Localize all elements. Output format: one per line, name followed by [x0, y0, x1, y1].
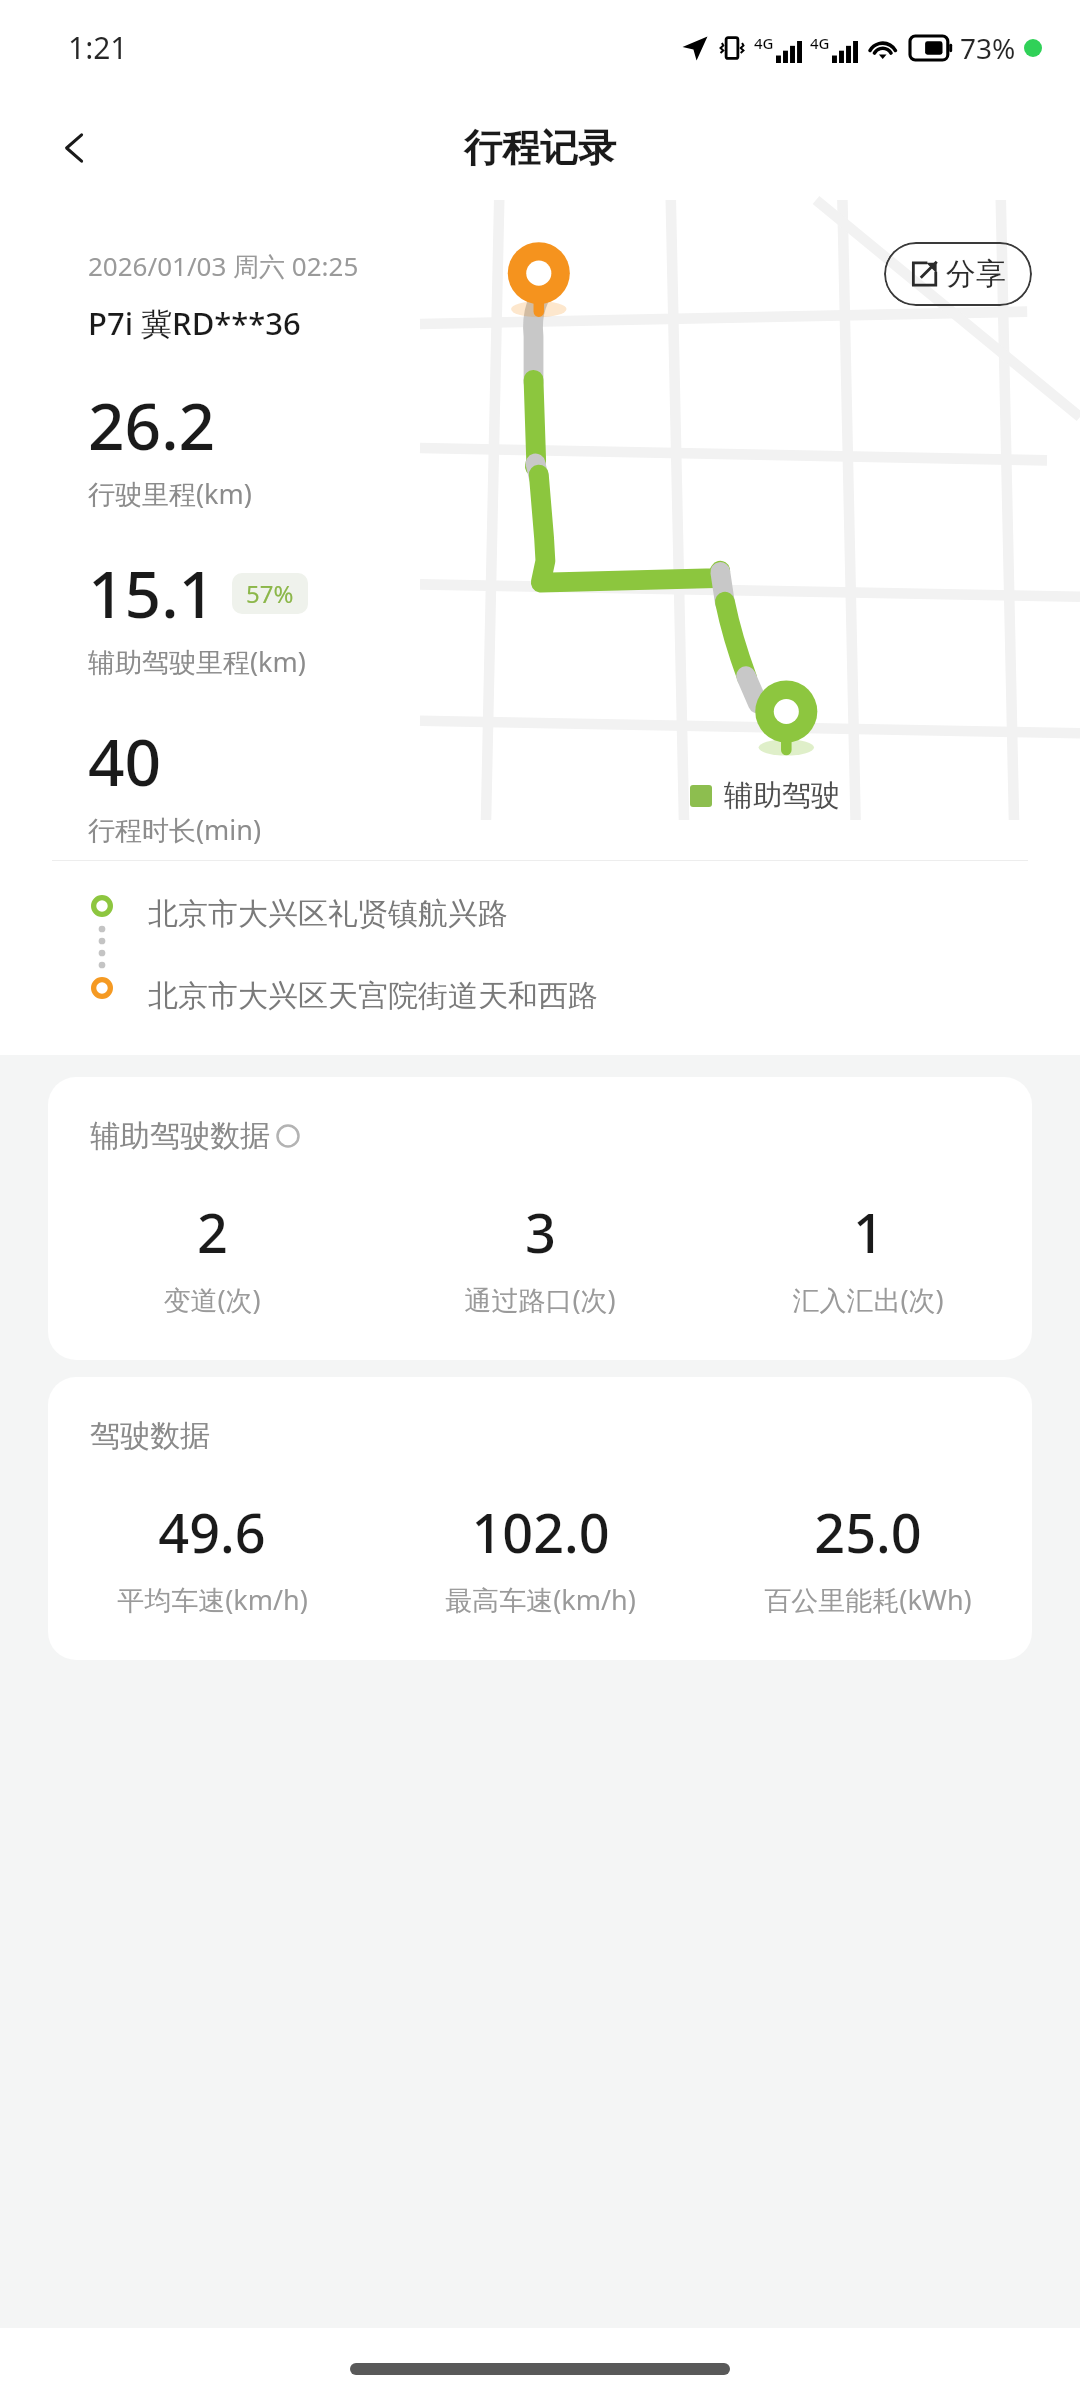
staticText: 汇入汇出(次) — [792, 1281, 944, 1318]
staticText: 驾驶数据 — [90, 1417, 210, 1455]
staticText: 102.0 — [471, 1495, 610, 1569]
staticText: 辅助驾驶里程(km) — [88, 643, 306, 680]
staticText: 辅助驾驶数据 — [90, 1117, 270, 1155]
staticText: 2 — [197, 1195, 228, 1269]
staticText: 北京市大兴区礼贤镇航兴路 — [148, 895, 508, 933]
staticText: 平均车速(km/h) — [117, 1581, 308, 1618]
staticText: 49.6 — [158, 1495, 266, 1569]
staticText: 北京市大兴区天宫院街道天和西路 — [148, 977, 598, 1015]
staticText: 26.2 — [88, 382, 216, 469]
staticText: 73% — [960, 29, 1016, 67]
staticText: 行程时长(min) — [88, 811, 262, 848]
staticText: P7i 冀RD***36 — [88, 302, 301, 344]
button[interactable]: 辅助驾驶数据 — [48, 1077, 1032, 1360]
button[interactable]: Back — [44, 117, 106, 179]
staticText: 行程记录 — [464, 124, 616, 172]
staticText: 3 — [525, 1195, 556, 1269]
staticText: 57% — [246, 577, 294, 610]
staticText: 通过路口(次) — [464, 1281, 616, 1318]
staticText: 变道(次) — [163, 1281, 261, 1318]
staticText: 40 — [88, 718, 162, 805]
button[interactable]: 分享 — [884, 242, 1032, 306]
staticText: 2026/01/03 周六 02:25 — [88, 248, 359, 284]
button[interactable]: 北京市大兴区礼贤镇航兴路 — [0, 861, 1080, 1055]
staticText: 4G — [754, 33, 774, 53]
button[interactable]: 驾驶数据 — [48, 1377, 1032, 1660]
staticText: 15.1 — [88, 550, 216, 637]
staticText: 行驶里程(km) — [88, 475, 252, 512]
staticText: 分享 — [946, 255, 1006, 293]
staticText: 4G — [810, 33, 830, 53]
staticText: 辅助驾驶 — [724, 777, 840, 814]
staticText: 25.0 — [814, 1495, 922, 1569]
staticText: 1 — [853, 1195, 884, 1269]
staticText: 1:21 — [68, 27, 128, 68]
staticText: 百公里能耗(kWh) — [764, 1581, 972, 1618]
staticText: 最高车速(km/h) — [445, 1581, 636, 1618]
